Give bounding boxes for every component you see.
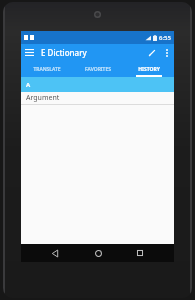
staticText: FAVORITES <box>85 66 111 73</box>
button[interactable]: A <box>21 77 174 92</box>
staticText: 6:55 <box>159 34 171 42</box>
button[interactable]: More options <box>160 46 174 60</box>
button[interactable]: Recent apps <box>131 244 149 262</box>
staticText: E Dictionary <box>41 47 87 58</box>
button[interactable]: HISTORY <box>123 61 174 77</box>
staticText: A <box>26 81 31 89</box>
button[interactable]: Open navigation drawer <box>21 44 38 61</box>
staticText: Argument <box>26 93 60 103</box>
button[interactable]: FAVORITES <box>72 61 123 77</box>
button[interactable]: Home <box>89 244 107 262</box>
staticText: TRANSLATE <box>33 66 61 73</box>
button[interactable]: Back <box>46 244 64 262</box>
button[interactable]: Argument <box>21 92 174 104</box>
button[interactable]: Edit <box>143 44 160 61</box>
staticText: HISTORY <box>138 66 160 73</box>
button[interactable]: TRANSLATE <box>21 61 72 77</box>
